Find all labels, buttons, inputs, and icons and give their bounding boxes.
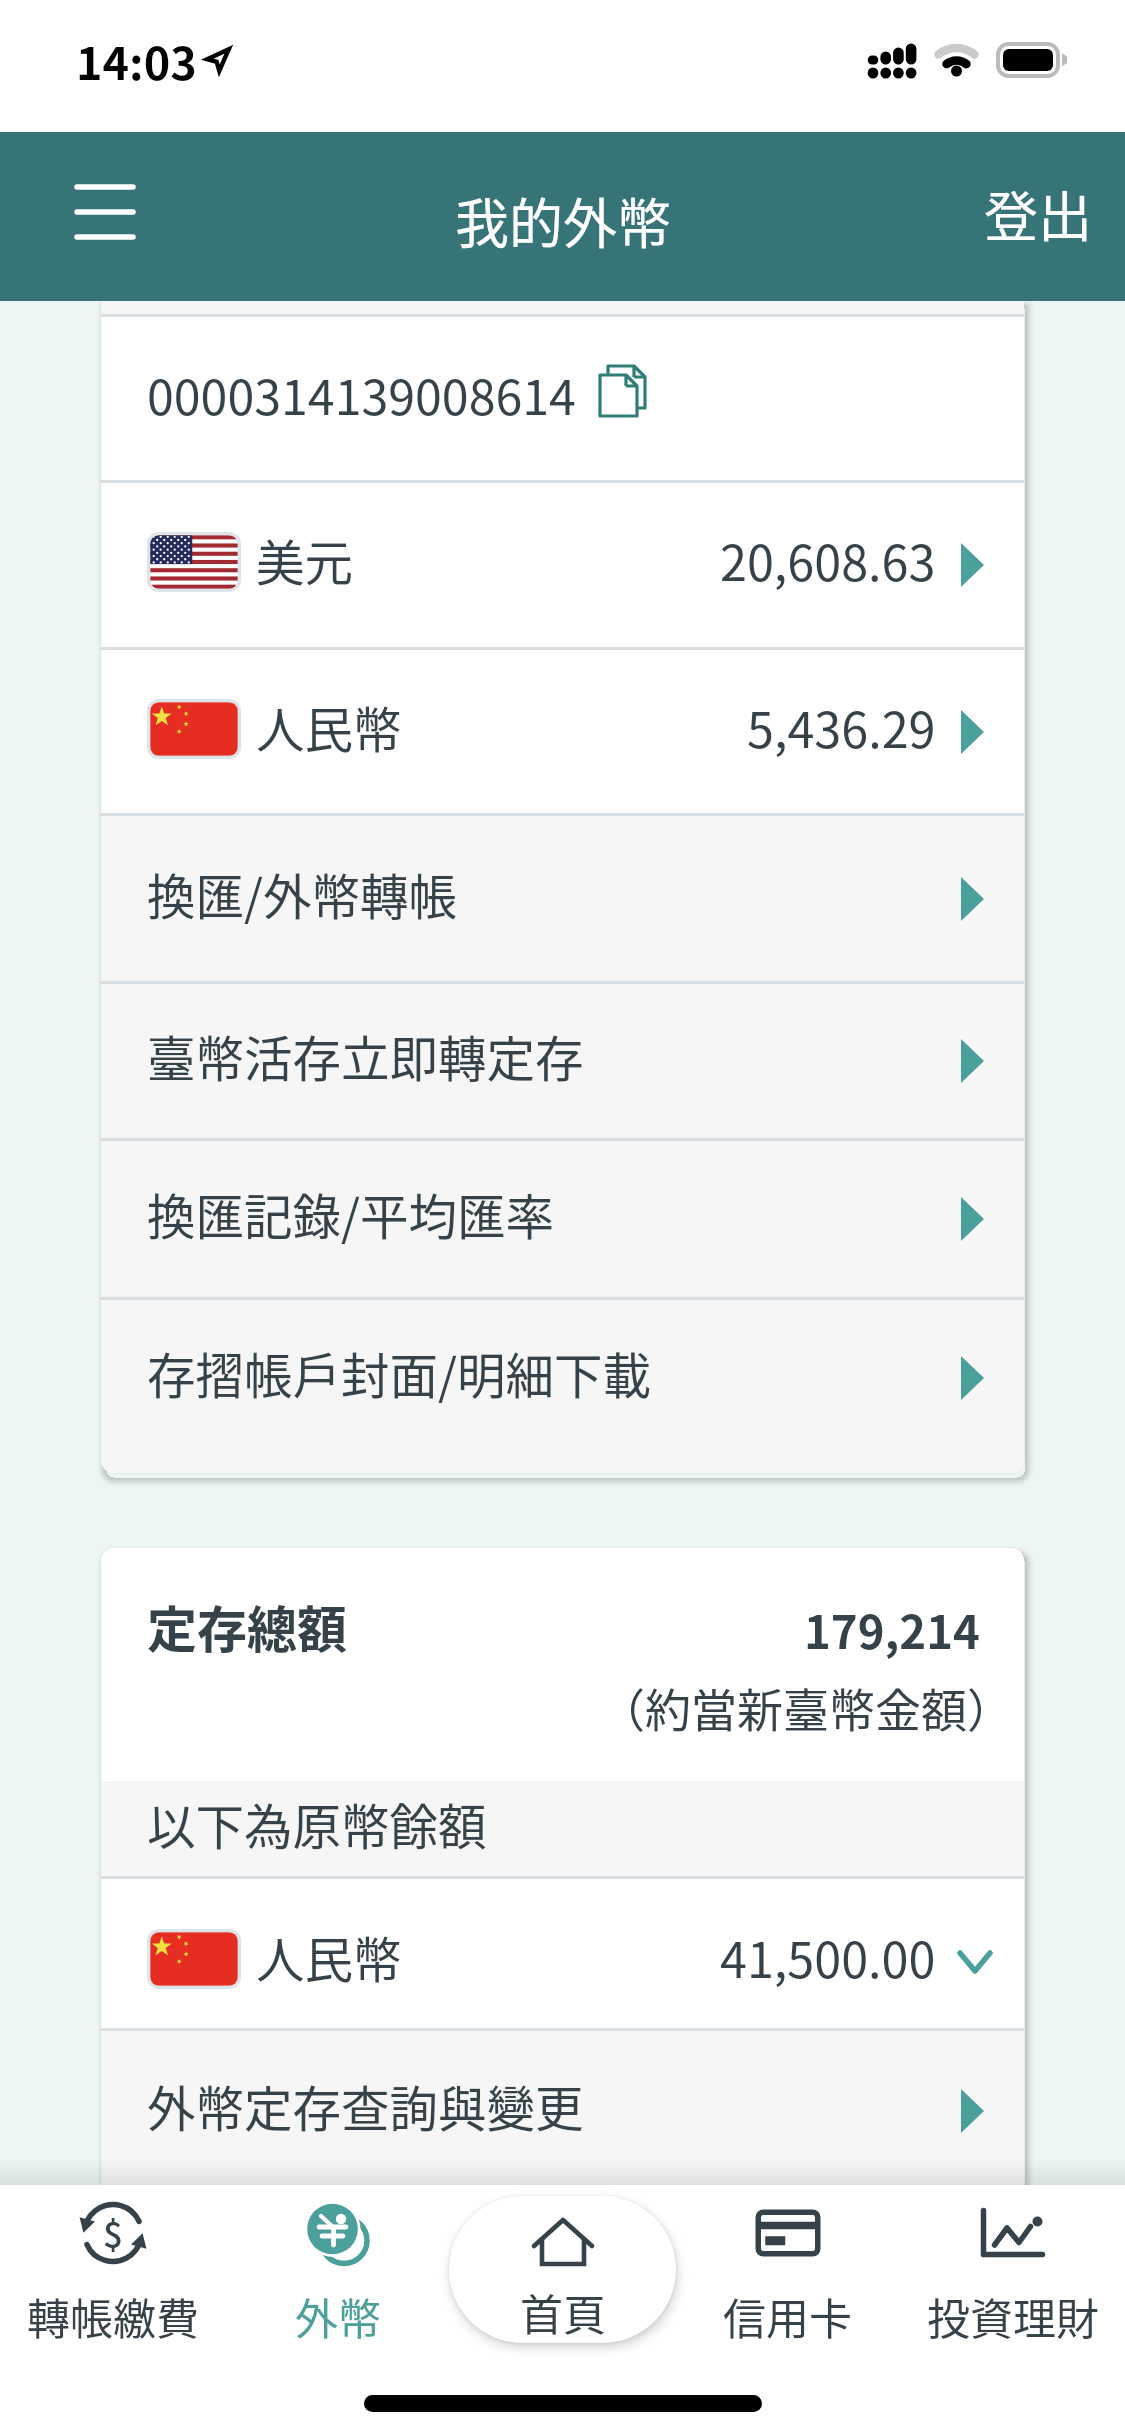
staticText: 美元 [256, 525, 354, 595]
button[interactable]: 定存總額 [101, 1548, 1024, 1781]
staticText: 179,214 [804, 1596, 980, 1662]
button[interactable]: 換匯/外幣轉帳 [101, 816, 1024, 981]
button[interactable]: 外幣 [225, 2185, 450, 2436]
staticText: 我的外幣 [455, 181, 671, 259]
button[interactable]: $ [0, 2185, 225, 2436]
staticText: 定存總額 [147, 1590, 347, 1662]
button[interactable]: 人民幣 [101, 650, 1024, 813]
staticText: 外幣定存查詢與變更 [147, 2071, 584, 2141]
staticText: 臺幣活存立即轉定存 [147, 1021, 584, 1091]
staticText: 首頁 [520, 2281, 606, 2343]
staticText: （約當新臺幣金額） [599, 1674, 1013, 1741]
button[interactable]: 投資理財 [900, 2185, 1125, 2436]
button[interactable]: 信用卡 [675, 2185, 900, 2436]
staticText: 投資理財 [927, 2285, 1099, 2347]
staticText: 轉帳繳費 [27, 2285, 199, 2347]
staticText: 5,436.29 [747, 692, 936, 762]
staticText: 外幣 [295, 2285, 381, 2347]
staticText: 14:03 [76, 28, 197, 93]
staticText: 以下為原幣餘額 [147, 1789, 487, 1859]
staticText: 0000314139008614 [147, 359, 576, 429]
button[interactable]: 外幣定存查詢與變更 [101, 2031, 1024, 2185]
staticText: 人民幣 [256, 1922, 402, 1992]
button[interactable]: Copy account number [598, 364, 647, 417]
button[interactable]: 換匯記錄/平均匯率 [101, 1141, 1024, 1297]
staticText: $ [103, 2207, 123, 2258]
button[interactable]: 臺幣活存立即轉定存 [101, 984, 1024, 1138]
staticText: 信用卡 [723, 2285, 852, 2347]
staticText: 登出 [984, 174, 1092, 252]
staticText: 20,608.63 [720, 525, 936, 595]
staticText: 存摺帳戶封面/明細下載 [147, 1338, 652, 1408]
button[interactable]: 人民幣 [101, 1879, 1024, 2028]
button[interactable]: 首頁 [449, 2196, 676, 2343]
staticText: 41,500.00 [720, 1922, 936, 1992]
button[interactable]: 登出 [951, 156, 1125, 278]
staticText: 人民幣 [256, 692, 402, 762]
button[interactable]: 美元 [101, 483, 1024, 647]
button[interactable]: 0000314139008614 [101, 317, 1024, 480]
staticText: 換匯記錄/平均匯率 [147, 1179, 555, 1249]
staticText: 換匯/外幣轉帳 [147, 859, 458, 929]
button[interactable]: Menu [44, 162, 166, 272]
button[interactable]: 存摺帳戶封面/明細下載 [101, 1300, 1024, 1455]
